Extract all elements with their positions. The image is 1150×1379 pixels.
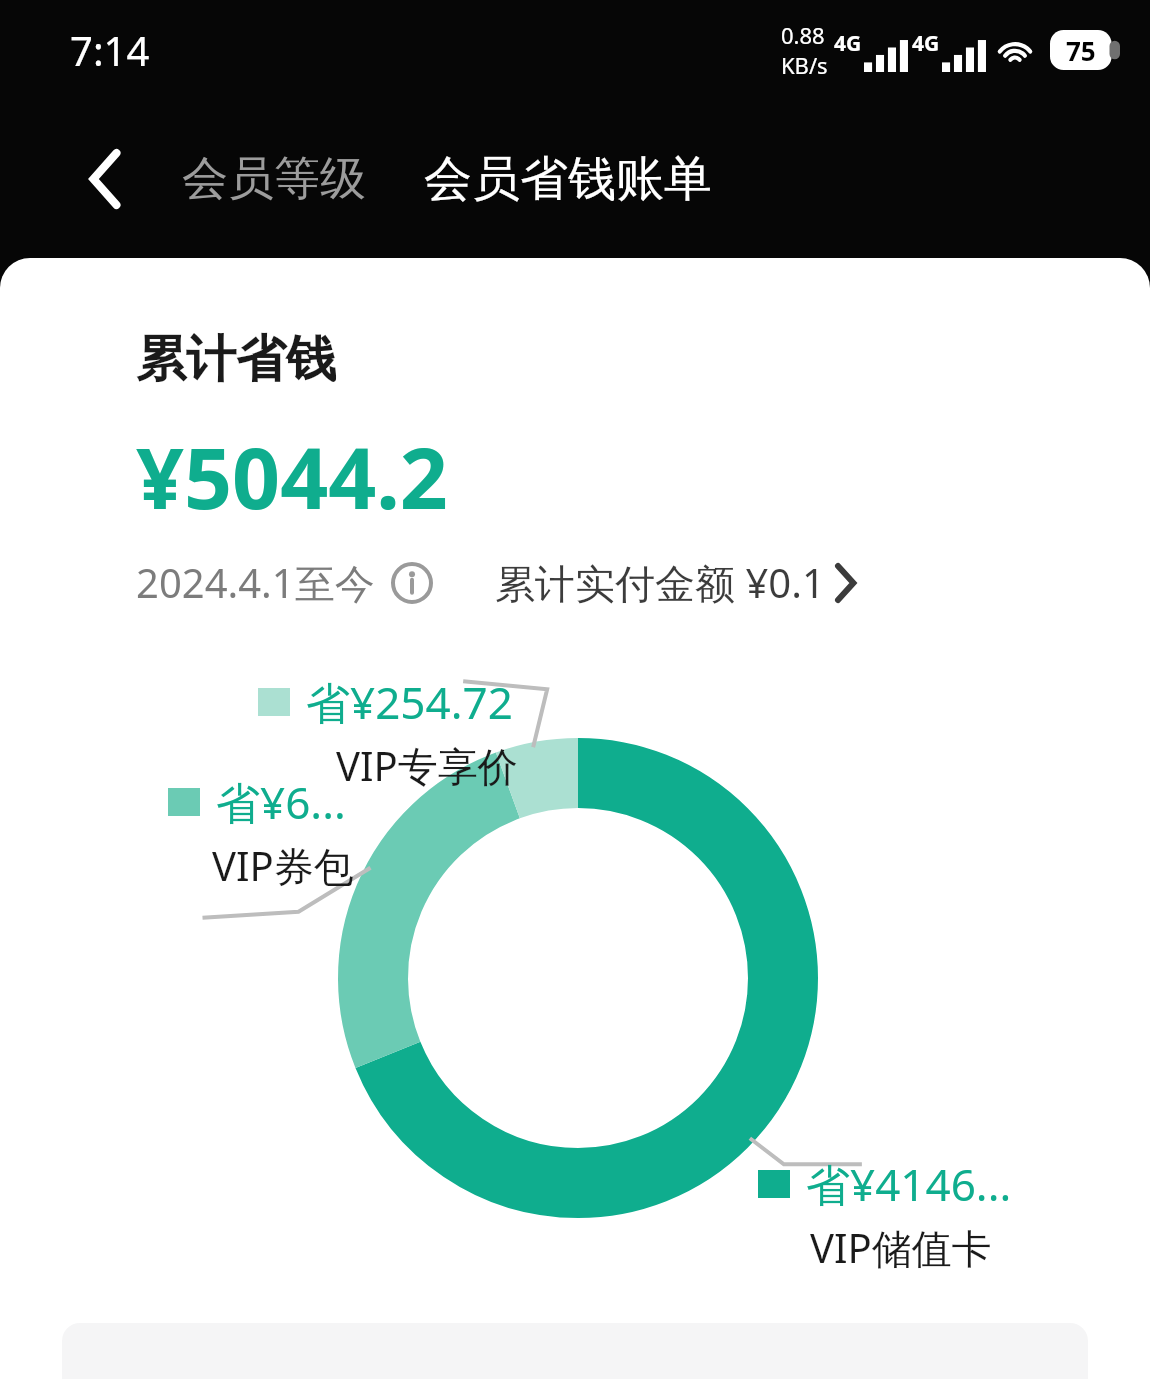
button[interactable]: 会员等级 [182, 150, 366, 208]
staticText: KB/s [781, 50, 828, 80]
button[interactable]: 省¥4146... [758, 1154, 1012, 1214]
button[interactable]: 会员省钱账单 [424, 149, 712, 209]
staticText: ¥5044.2 [136, 419, 448, 533]
staticText: 累计省钱 [136, 328, 336, 391]
staticText: 0.88 [781, 20, 825, 50]
staticText: 2024.4.1至今 [136, 555, 375, 610]
staticText: VIP专享价 [336, 738, 518, 793]
button[interactable]: 省¥254.72 [258, 672, 513, 732]
button[interactable]: 累计实付金额 ¥0.1 [495, 555, 855, 610]
staticText: 会员等级 [182, 150, 366, 208]
staticText: 会员省钱账单 [424, 149, 712, 209]
staticText: VIP储值卡 [810, 1220, 992, 1275]
staticText: 7:14 [70, 23, 150, 77]
staticText: 4G [834, 29, 862, 58]
staticText: 省¥6... [216, 772, 346, 832]
button[interactable]: Back [70, 143, 142, 215]
staticText: 省¥254.72 [306, 672, 513, 732]
staticText: VIP券包 [212, 838, 354, 893]
staticText: 4G [912, 29, 940, 58]
button[interactable]: 省¥6... [168, 772, 346, 832]
staticText: 累计实付金额 ¥0.1 [495, 555, 825, 610]
staticText: 省¥4146... [806, 1154, 1012, 1214]
button[interactable]: 2024.4.1至今 [136, 555, 433, 610]
staticText: 75 [1066, 33, 1096, 68]
